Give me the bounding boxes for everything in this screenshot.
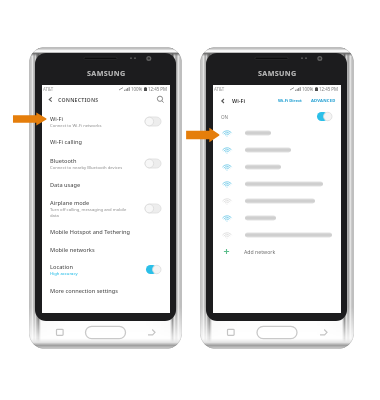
staticText: CONNECTIONS [58,96,99,103]
staticText: High accuracy [50,271,78,277]
staticText: data [50,213,59,219]
other: Add [222,247,231,256]
staticText: 12:45 PM [319,86,339,92]
button[interactable] [213,141,341,158]
button[interactable] [213,209,341,226]
button[interactable]: Mobile networks [42,241,170,258]
staticText: SAMSUNG [87,68,126,78]
button[interactable]: More connection settings [42,281,170,300]
other: Search [156,95,165,104]
staticText: Mobile networks [50,246,95,254]
other: Back [219,97,227,105]
staticText: 100% [302,86,314,92]
staticText: AT&T [214,86,225,92]
button[interactable]: ON [213,109,341,124]
staticText: Mobile Hotspot and Tethering [50,228,130,236]
staticText: SAMSUNG [258,68,297,78]
button[interactable] [213,226,341,243]
button[interactable] [213,175,341,192]
button[interactable]: Bluetooth [42,152,170,175]
other: Back [46,95,55,104]
staticText: Add network [244,248,276,255]
button[interactable]: Airplane mode [42,194,170,223]
staticText: Airplane mode [50,199,90,207]
button[interactable] [213,192,341,209]
other: Next step [12,112,47,126]
button[interactable]: ADVANCED [311,98,336,104]
button[interactable]: Add [213,243,341,260]
staticText: 100% [131,86,143,92]
other: Next step [185,127,220,143]
staticText: Connect to nearby Bluetooth devices [50,165,123,171]
button[interactable] [213,124,341,141]
staticText: Turn off calling, messaging and mobile [50,207,127,213]
staticText: 12:45 PM [148,86,168,92]
button[interactable]: Back [213,92,341,109]
staticText: Bluetooth [50,157,77,165]
button[interactable] [213,158,341,175]
staticText: Connect to Wi-Fi networks [50,123,102,129]
button[interactable]: Wi-Fi Direct [278,98,302,104]
button[interactable]: Wi-Fi [42,111,170,132]
staticText: ON [221,114,229,120]
button[interactable]: Location [42,258,170,281]
button[interactable]: Mobile Hotspot and Tethering [42,223,170,241]
staticText: More connection settings [50,287,119,295]
staticText: Location [50,263,73,271]
staticText: Wi-Fi [50,115,64,123]
staticText: Wi-Fi [232,97,246,104]
button[interactable]: Wi-Fi calling [42,132,170,152]
staticText: Wi-Fi calling [50,138,82,146]
staticText: Data usage [50,181,81,189]
button[interactable]: Data usage [42,175,170,194]
staticText: AT&T [43,86,54,92]
button[interactable]: Back [42,92,170,107]
